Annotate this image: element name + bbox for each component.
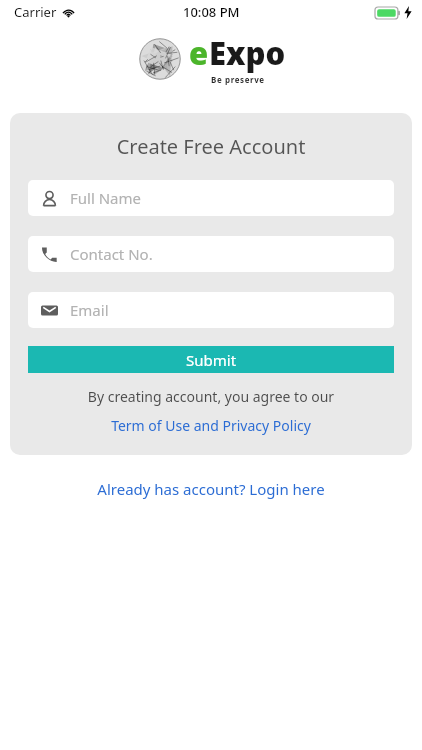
staticText: Term of Use and Privacy Policy	[111, 416, 311, 435]
button[interactable]: Submit	[28, 346, 394, 373]
button[interactable]: Email	[28, 292, 394, 328]
staticText: Be preserve	[211, 74, 265, 85]
button[interactable]: Term of Use and Privacy Policy	[28, 416, 394, 435]
other: Contact number	[41, 246, 57, 262]
staticText: Create Free Account	[28, 133, 394, 160]
staticText: Expo	[209, 32, 286, 74]
button[interactable]: Contact number	[28, 236, 394, 272]
other: Email	[41, 302, 58, 319]
staticText: Submit	[186, 350, 237, 370]
staticText: By creating account, you agree to our	[28, 387, 394, 406]
staticText: e	[189, 32, 209, 74]
other: Full name	[41, 190, 58, 207]
button[interactable]: Already has account? Login here	[0, 479, 422, 499]
button[interactable]: Full name	[28, 180, 394, 216]
staticText: Full Name	[70, 188, 141, 208]
staticText: Carrier	[14, 3, 57, 21]
staticText: Already has account? Login here	[97, 479, 325, 499]
staticText: Email	[70, 300, 109, 320]
staticText: Contact No.	[70, 244, 153, 264]
staticText: 10:08 PM	[183, 3, 240, 21]
